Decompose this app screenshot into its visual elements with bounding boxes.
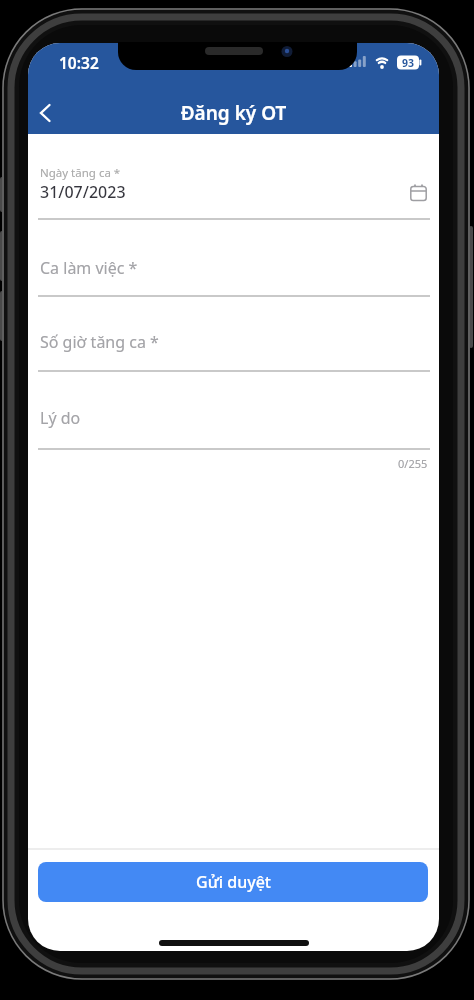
staticText: Đăng ký OT [28,100,439,126]
staticText: 0/255 [398,456,428,471]
staticText: Ca làm việc * [40,257,138,279]
button[interactable]: Gửi duyệt [38,862,428,902]
button[interactable]: Số giờ tăng ca * [38,323,430,370]
button[interactable]: Ngày tăng ca * [38,161,430,218]
staticText: 93 [397,56,419,70]
staticText: Số giờ tăng ca * [40,331,159,353]
button[interactable]: Lý do [38,399,430,448]
button[interactable]: Ca làm việc * [38,247,430,294]
staticText: 10:32 [59,52,99,73]
button[interactable] [32,99,60,127]
staticText: 31/07/2023 [40,181,126,203]
staticText: Gửi duyệt [196,871,271,893]
staticText: Ngày tăng ca * [40,165,121,181]
staticText: Lý do [40,407,81,429]
